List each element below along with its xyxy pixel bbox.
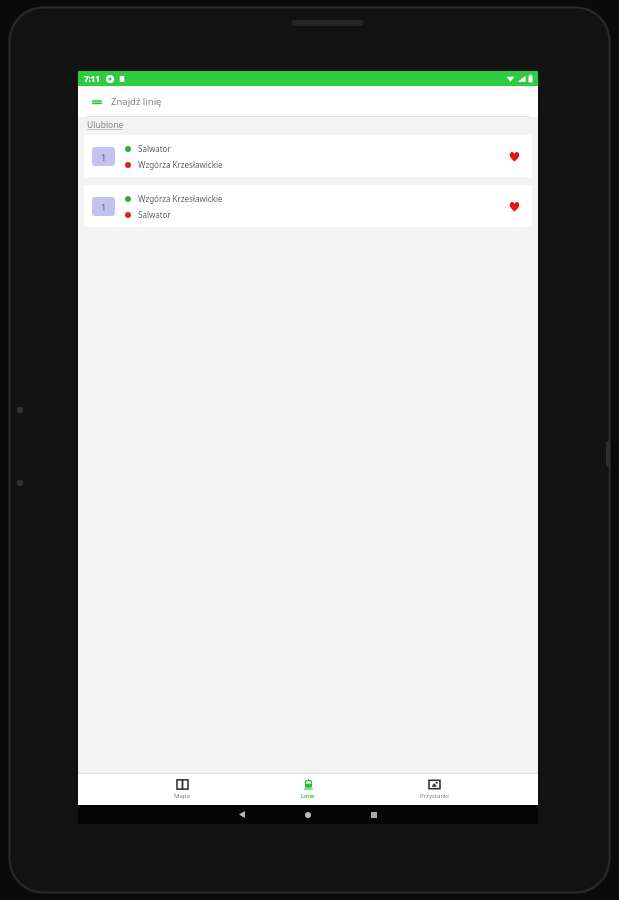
button[interactable]: Usuń z ulubionych — [500, 142, 528, 170]
button[interactable]: Home — [296, 805, 320, 824]
button[interactable]: 1 — [84, 135, 532, 177]
staticText: Wzgórza Krzesławickie — [138, 159, 223, 170]
button[interactable]: Back — [230, 805, 254, 824]
staticText: Linie — [301, 792, 315, 800]
staticText: Przystanki — [420, 792, 449, 800]
button[interactable]: Przystanki — [405, 774, 463, 805]
button[interactable]: Linie — [279, 774, 337, 805]
button[interactable]: Recents — [362, 805, 386, 824]
staticText: Ulubione — [87, 119, 124, 131]
button[interactable]: Znajdź linię — [78, 86, 538, 117]
staticText: Znajdź linię — [111, 95, 162, 108]
staticText: Wzgórza Krzesławickie — [138, 193, 223, 204]
staticText: Mapa — [174, 792, 190, 800]
staticText: 1 — [101, 151, 107, 163]
staticText: Salwator — [138, 143, 171, 154]
staticText: 7:11 — [84, 73, 100, 84]
button[interactable]: 1 — [84, 185, 532, 227]
button[interactable]: Mapa — [153, 774, 211, 805]
button[interactable]: Ulubione — [78, 117, 538, 132]
staticText: Salwator — [138, 209, 171, 220]
button[interactable]: Usuń z ulubionych — [500, 192, 528, 220]
staticText: 1 — [101, 201, 107, 213]
